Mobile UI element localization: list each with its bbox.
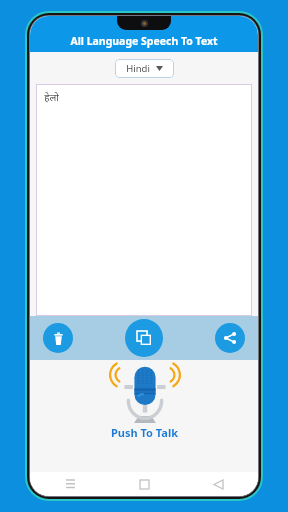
button[interactable]: Home xyxy=(134,474,154,494)
button[interactable]: Back xyxy=(208,474,228,494)
button[interactable]: Hindi xyxy=(115,59,174,78)
button[interactable]: हेलो xyxy=(36,84,252,316)
staticText: Push To Talk xyxy=(111,425,178,440)
button[interactable]: Share xyxy=(215,323,245,353)
button[interactable]: Recent apps xyxy=(60,474,80,494)
button[interactable]: Push To Talk xyxy=(111,365,178,440)
staticText: Hindi xyxy=(126,62,150,75)
staticText: हेलो xyxy=(44,90,59,104)
button[interactable]: Delete xyxy=(43,323,73,353)
staticText: All Language Speech To Text xyxy=(70,34,218,48)
button[interactable]: Copy xyxy=(125,319,163,357)
